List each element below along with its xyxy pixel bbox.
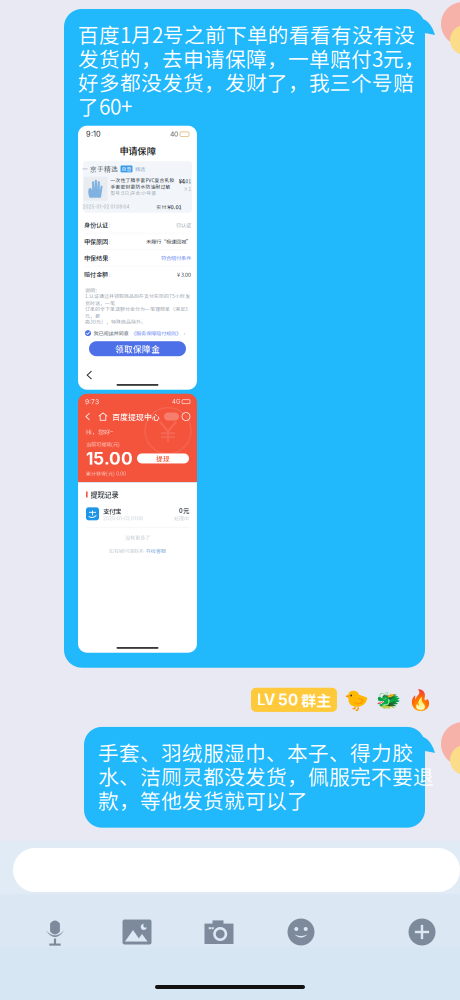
staticText: ×1 (183, 186, 191, 192)
staticText: 赔付金额 (84, 270, 108, 279)
staticText: .01 (184, 178, 191, 184)
staticText: : (108, 237, 110, 245)
staticText: 水、洁厕灵都没发货，佩服完不要退 (98, 761, 434, 791)
button[interactable]: Back (86, 370, 94, 380)
staticText: Hi，您好~ (86, 427, 113, 436)
staticText: 累计获得(元) (86, 470, 115, 477)
staticText: 0.00 (115, 470, 126, 477)
staticText: 50 (278, 690, 298, 709)
staticText: 🐲 (376, 688, 401, 711)
staticText: 申保原因 (84, 237, 108, 246)
staticText: 40 (170, 130, 178, 138)
staticText: 🔥 (408, 688, 433, 711)
staticText: 处理中 (174, 515, 189, 522)
staticText: 身份认证 (84, 220, 108, 229)
staticText: 符合赔付条件 (161, 254, 191, 262)
button[interactable]: Voice message (38, 916, 72, 948)
staticText: LV (257, 690, 275, 709)
staticText: 型号:3只;开合:小号装 (110, 190, 156, 196)
staticText: 已认证 (176, 221, 191, 229)
staticText: 🐤 (344, 688, 369, 711)
staticText: 15.00 (86, 448, 133, 469)
staticText: 支付宝 (103, 506, 121, 516)
staticText: 京于精选 (90, 164, 118, 174)
staticText: ¥4 (178, 177, 184, 186)
staticText: 如有疑问请联系 (109, 547, 144, 554)
button[interactable]: 领取保障金 (89, 341, 186, 356)
staticText: 我已阅读并同意 (93, 329, 128, 337)
staticText: 自营 (121, 165, 131, 172)
staticText: 《服务保障赔付规则》 (131, 329, 181, 337)
button[interactable]: Message field (13, 848, 460, 892)
staticText: : (108, 270, 110, 278)
staticText: 百度1月2号之前下单的看看有没有没 (78, 19, 415, 49)
staticText: 在线客服 (146, 547, 166, 554)
staticText: 0元 (179, 506, 189, 515)
staticText: : (108, 221, 110, 229)
staticText: 款，等他发货就可以了 (98, 785, 308, 815)
staticText: 一次性丁腈手套PVC复合乳胶 (110, 177, 174, 184)
staticText: 申保结果 (84, 253, 108, 262)
staticText: ¥0.01 (167, 203, 181, 211)
staticText: 订单的全下单送额付金分为一笔理赔单（满足3元，最 (85, 305, 188, 319)
staticText: 发货的，去申请保障，一单赔付3元， (78, 43, 425, 73)
staticText: › (183, 329, 185, 337)
staticText: 没有更多了 (125, 533, 150, 541)
staticText: 提现记录 (91, 489, 119, 500)
staticText: 1.认证通过并领取商品后在支付实际的75小时发货时送，一笔 (85, 292, 190, 307)
staticText: 当前可提现(元) (86, 440, 120, 448)
staticText: 4G (172, 398, 180, 405)
button[interactable]: More (405, 917, 439, 947)
staticText: 群主 (301, 689, 331, 711)
staticText: 手套、羽绒服湿巾、本子、得力胶 (98, 737, 413, 767)
button[interactable]: Photos (120, 917, 154, 947)
button[interactable]: Emoji (284, 917, 318, 947)
staticText: 实付: (156, 203, 167, 210)
staticText: 申请保障 (119, 144, 155, 157)
staticText: 高30元），特殊商品除外。 (85, 318, 146, 325)
staticText: 9:10 (86, 130, 101, 139)
staticText: 了60+ (78, 91, 132, 121)
staticText: 未履行“极速回城” (146, 237, 191, 245)
staticText: 说明： (85, 286, 100, 294)
staticText: 好多都没发货，发财了，我三个号赔 (78, 67, 414, 97)
staticText: : (108, 254, 110, 262)
staticText: 百度提现中心 (112, 411, 160, 422)
staticText: 2025-01-02 01:09:04 (82, 204, 129, 210)
staticText: 手套密封雾防水防油耐过敏 (110, 183, 170, 190)
staticText: 2025-01-02 01:09 (103, 515, 143, 521)
button[interactable]: Camera (202, 917, 236, 947)
staticText: 精选 (135, 165, 145, 173)
staticText: 9:73 (85, 398, 99, 406)
staticText: 领取保障金 (115, 342, 160, 355)
staticText: ¥ 3.00 (177, 270, 191, 278)
staticText: 提现 (156, 454, 170, 463)
button[interactable]: 提现 (137, 453, 189, 463)
